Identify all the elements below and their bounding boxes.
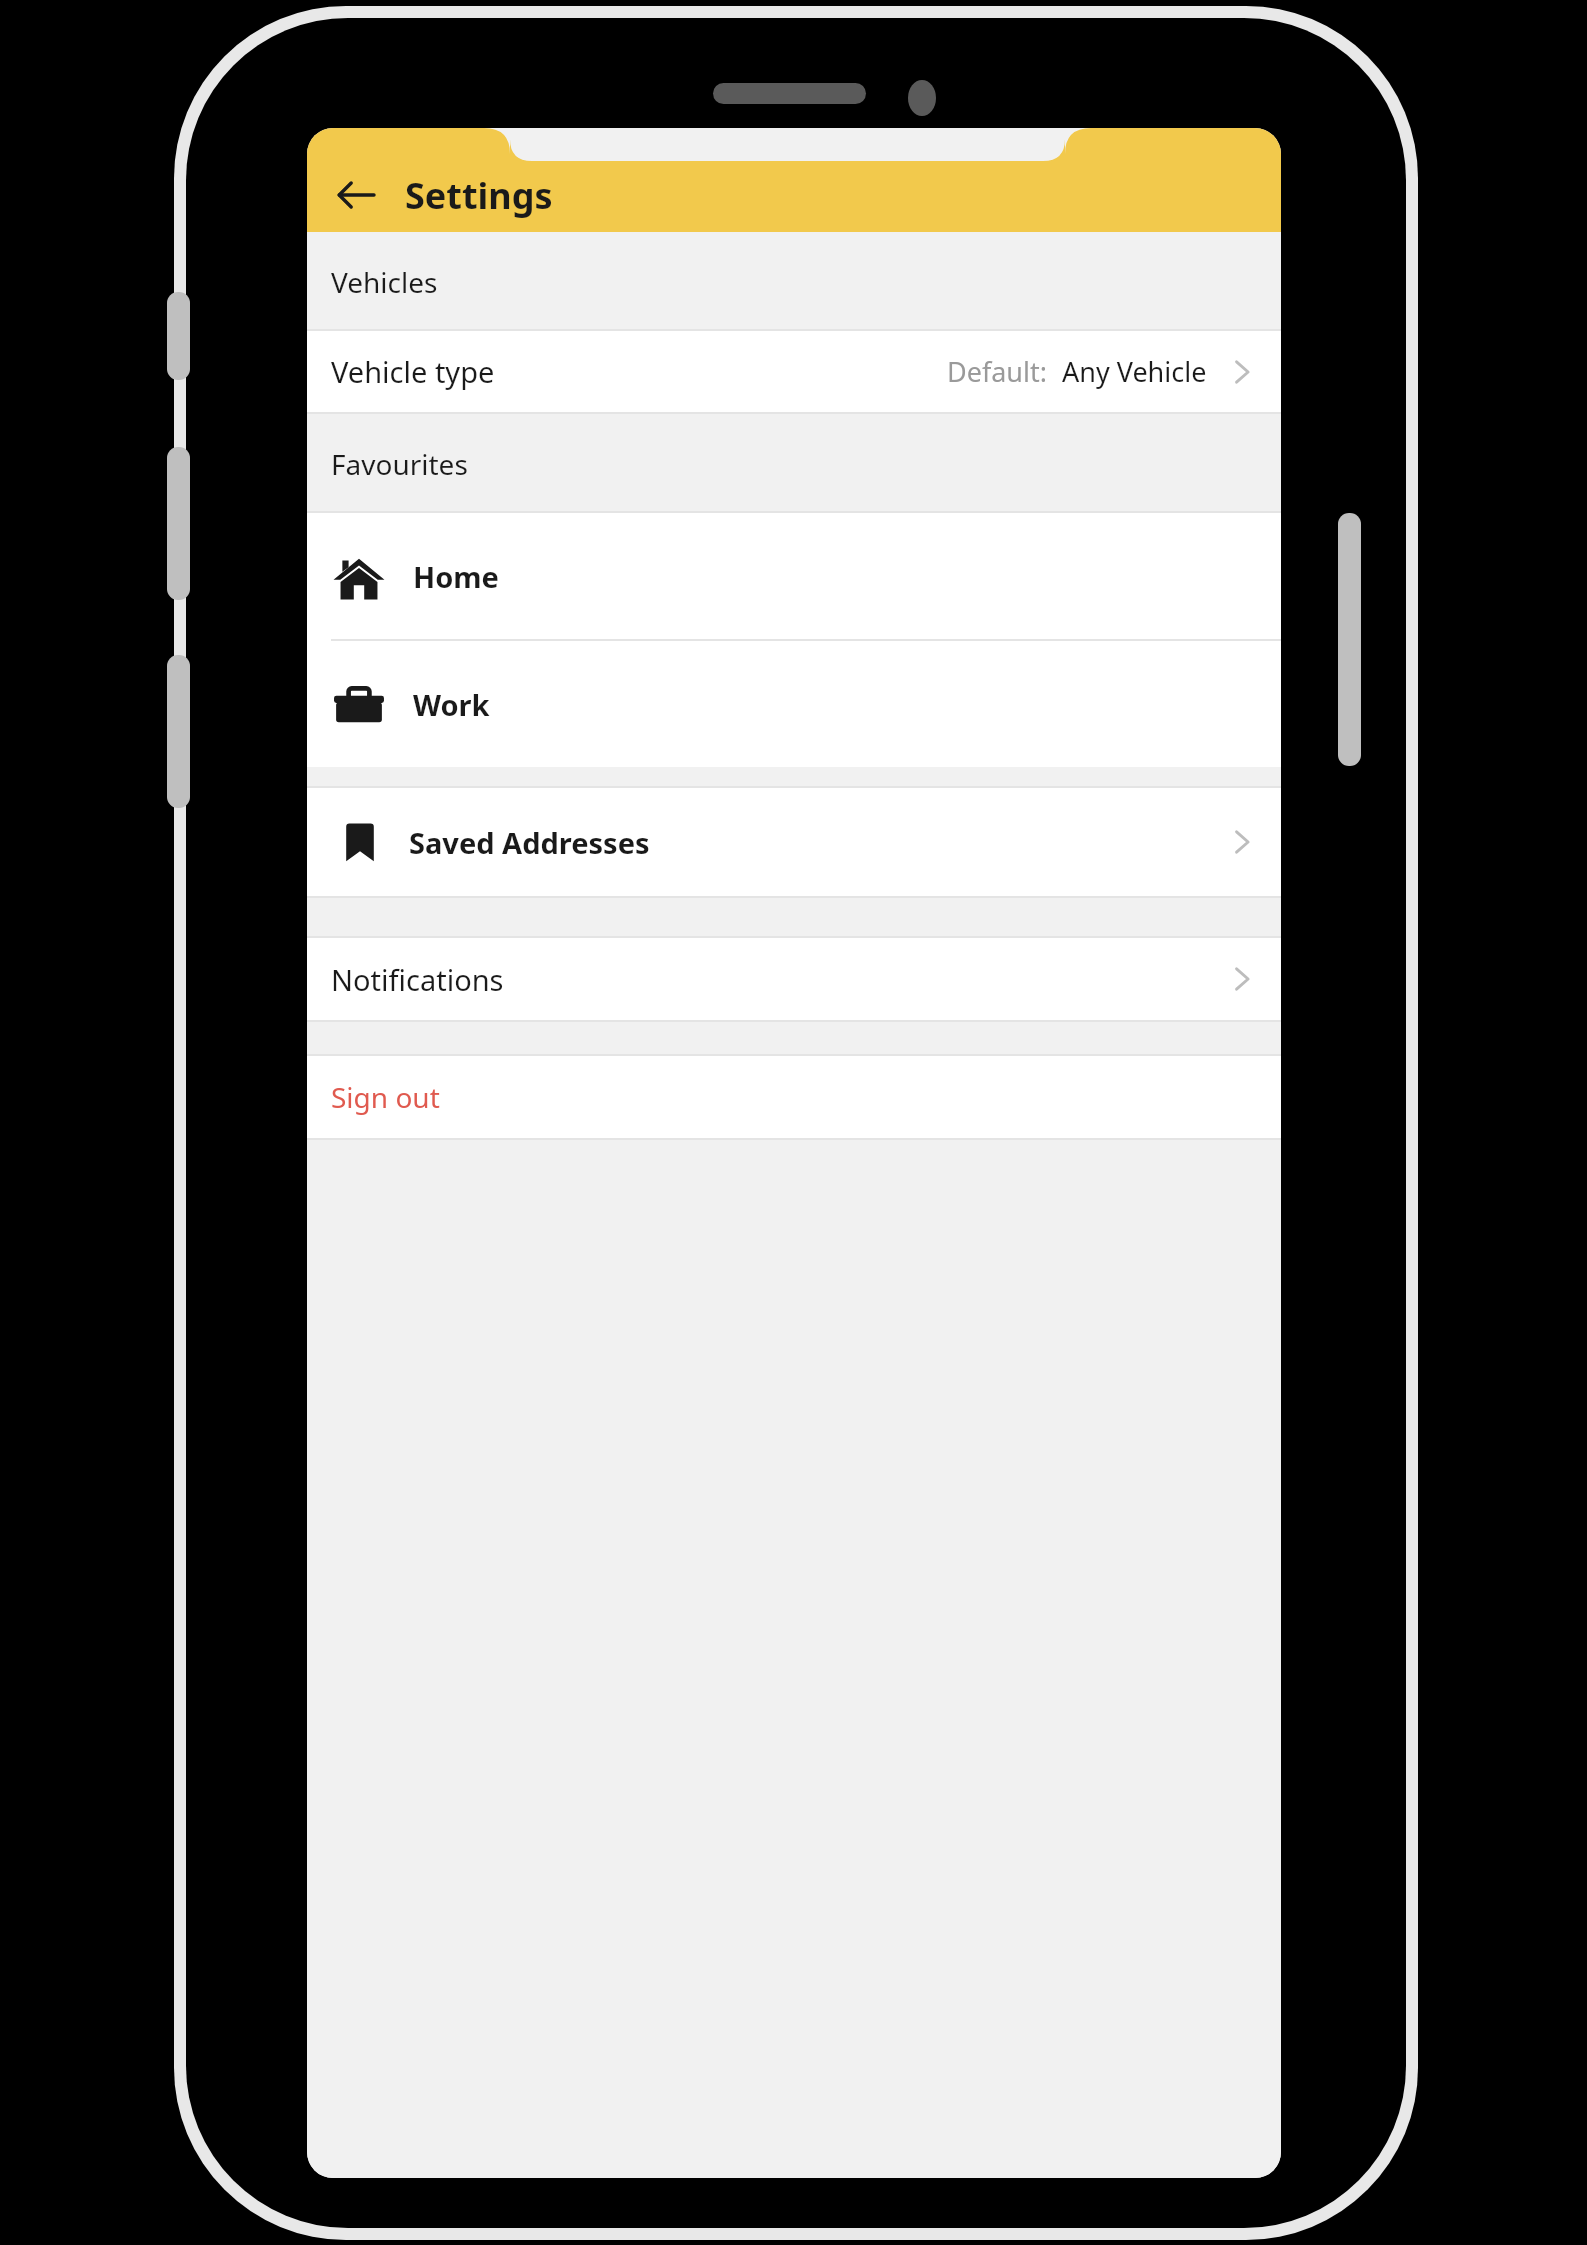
staticText: Favourites <box>331 445 468 483</box>
staticText: Vehicles <box>331 263 438 301</box>
button[interactable]: Work <box>307 641 1281 767</box>
other: Open <box>1225 355 1259 389</box>
button[interactable]: Saved Addresses <box>307 788 1281 896</box>
button[interactable]: Vehicle type <box>307 331 1281 412</box>
button[interactable]: Notifications <box>307 938 1281 1020</box>
staticText: Settings <box>405 171 553 220</box>
button[interactable]: Back <box>325 164 387 226</box>
staticText: Default: <box>947 353 1048 390</box>
staticText: Home <box>413 557 499 596</box>
staticText: Work <box>413 685 490 724</box>
other: Open <box>1225 825 1259 859</box>
button[interactable]: Sign out <box>307 1056 1281 1138</box>
staticText: Saved Addresses <box>409 823 650 862</box>
button[interactable]: Home <box>307 513 1281 639</box>
staticText: Sign out <box>331 1078 440 1116</box>
staticText: Any Vehicle <box>1062 353 1207 390</box>
other: Open <box>1225 962 1259 996</box>
staticText: Vehicle type <box>331 352 495 391</box>
staticText: Notifications <box>331 960 504 999</box>
